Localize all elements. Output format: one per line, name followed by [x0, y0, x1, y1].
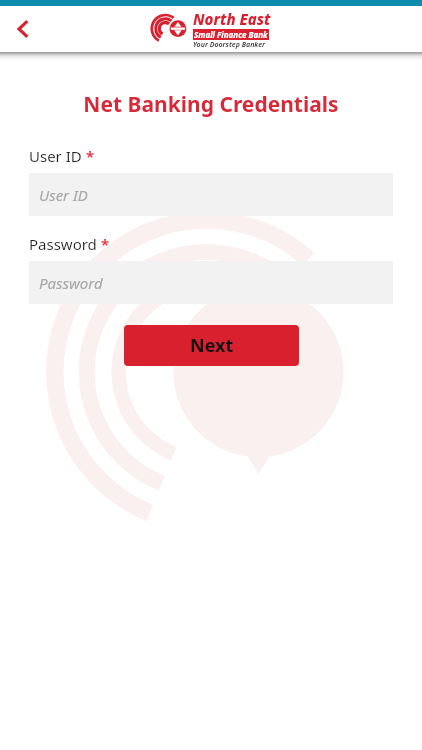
staticText: Your Doorstep Banker	[193, 40, 266, 50]
staticText: *	[86, 146, 95, 166]
button[interactable]: User ID	[29, 173, 393, 216]
staticText: User ID	[29, 146, 82, 166]
staticText: User ID	[39, 185, 88, 205]
staticText: Password	[39, 273, 103, 293]
button[interactable]: Next	[124, 325, 299, 366]
button[interactable]: Password	[29, 261, 393, 304]
staticText: Small Finance Bank	[194, 29, 268, 40]
staticText: Net Banking Credentials	[29, 90, 393, 119]
staticText: North East	[193, 9, 271, 29]
staticText: *	[101, 234, 110, 254]
staticText: Password	[29, 234, 97, 254]
button[interactable]: Back	[0, 6, 46, 52]
staticText: Next	[190, 333, 234, 358]
